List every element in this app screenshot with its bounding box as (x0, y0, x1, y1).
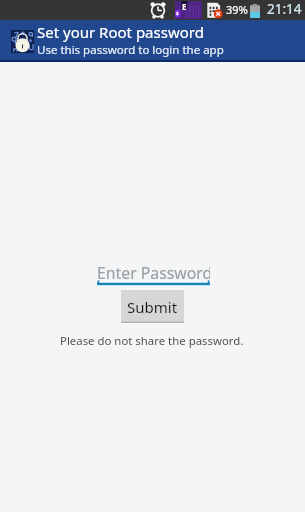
staticText: Enter Password (97, 262, 210, 284)
staticText: Please do not share the password. (60, 333, 244, 349)
staticText: Submit (127, 297, 178, 317)
staticText: Set your Root password (37, 22, 204, 42)
button[interactable]: Submit (121, 290, 184, 323)
staticText: Use this password to login the app (37, 42, 224, 58)
staticText: E (182, 1, 187, 12)
staticText: 39% (226, 2, 248, 17)
staticText: 21:14 (267, 0, 302, 18)
button[interactable]: Enter Password (97, 262, 210, 286)
